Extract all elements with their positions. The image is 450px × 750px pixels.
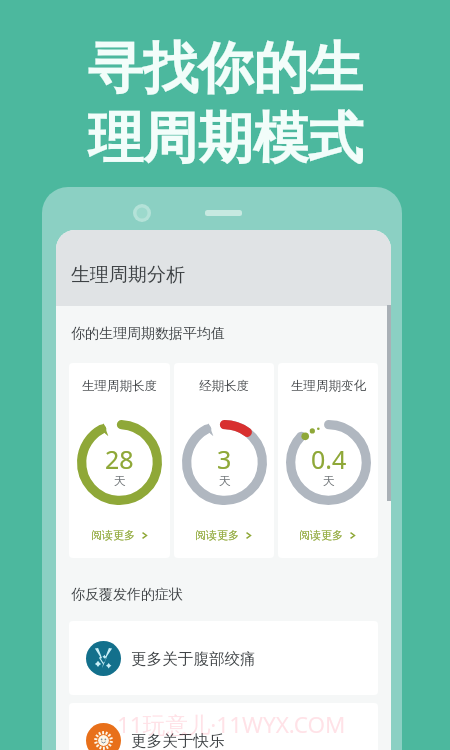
other: Happy [86,723,121,750]
staticText: 阅读更多 [299,528,343,542]
button[interactable]: Cramps [69,621,378,695]
staticText: 生理周期长度 [82,378,157,394]
staticText: 生理周期分析 [71,263,185,287]
staticText: 阅读更多 [195,528,239,542]
staticText: 天 [219,473,231,488]
staticText: 更多关于腹部绞痛 [131,649,256,669]
staticText: 阅读更多 [91,528,135,542]
other: Cramps [86,641,121,676]
button[interactable]: 经期长度 [174,363,274,558]
button[interactable]: 生理周期变化 [278,363,378,558]
staticText: 理周期模式 [88,104,363,173]
staticText: 3 [217,442,232,476]
staticText: 你的生理周期数据平均值 [71,325,225,343]
staticText: 经期长度 [199,378,249,394]
staticText: 你反覆发作的症状 [71,586,183,604]
button[interactable]: 生理周期长度 [69,363,170,558]
staticText: 天 [114,473,126,488]
staticText: 11玩意儿·11WYX.COM [117,709,346,740]
button[interactable]: 生理周期分析 [56,230,391,306]
staticText: 寻找你的生 [88,34,363,103]
staticText: 更多关于快乐 [131,731,225,750]
staticText: 生理周期变化 [291,378,366,394]
staticText: 0.4 [311,442,347,476]
staticText: 天 [323,473,335,488]
staticText: 28 [105,442,134,476]
button[interactable]: Happy [69,703,378,750]
